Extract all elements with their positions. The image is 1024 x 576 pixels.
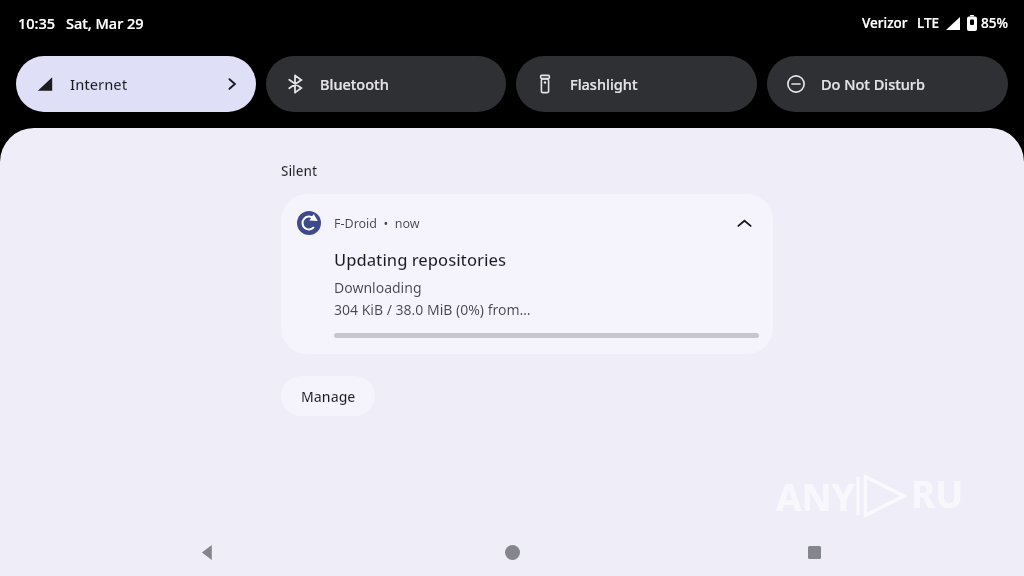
staticText: Verizor — [862, 14, 908, 32]
button[interactable]: Bluetooth — [266, 56, 506, 112]
staticText: 304 KiB / 38.0 MiB (0%) from… — [334, 300, 531, 319]
button[interactable]: Manage — [281, 376, 375, 416]
button[interactable]: Flashlight — [516, 56, 757, 112]
button[interactable]: Recent apps — [792, 530, 836, 574]
button[interactable]: Do Not Disturb — [767, 56, 1008, 112]
staticText: Manage — [301, 387, 356, 406]
staticText: 85% — [981, 14, 1008, 32]
button[interactable]: Back — [186, 530, 230, 574]
button[interactable]: Collapse notification — [729, 208, 759, 238]
staticText: Internet — [70, 74, 128, 94]
staticText: Sat, Mar 29 — [66, 13, 144, 33]
button[interactable]: Internet — [16, 56, 256, 112]
staticText: Do Not Disturb — [821, 74, 925, 94]
staticText: RUN — [911, 468, 984, 524]
staticText: Downloading — [334, 278, 422, 297]
staticText: 10:35 — [18, 13, 56, 33]
staticText: Silent — [281, 162, 318, 180]
staticText: Bluetooth — [320, 74, 389, 94]
staticText: ANY — [776, 471, 855, 521]
button[interactable]: Home — [490, 530, 534, 574]
staticText: Flashlight — [570, 74, 638, 94]
staticText: F-Droid • now — [334, 215, 420, 232]
staticText: Updating repositories — [334, 248, 506, 270]
button[interactable]: F-Droid • now — [281, 194, 773, 354]
staticText: LTE — [917, 14, 940, 32]
